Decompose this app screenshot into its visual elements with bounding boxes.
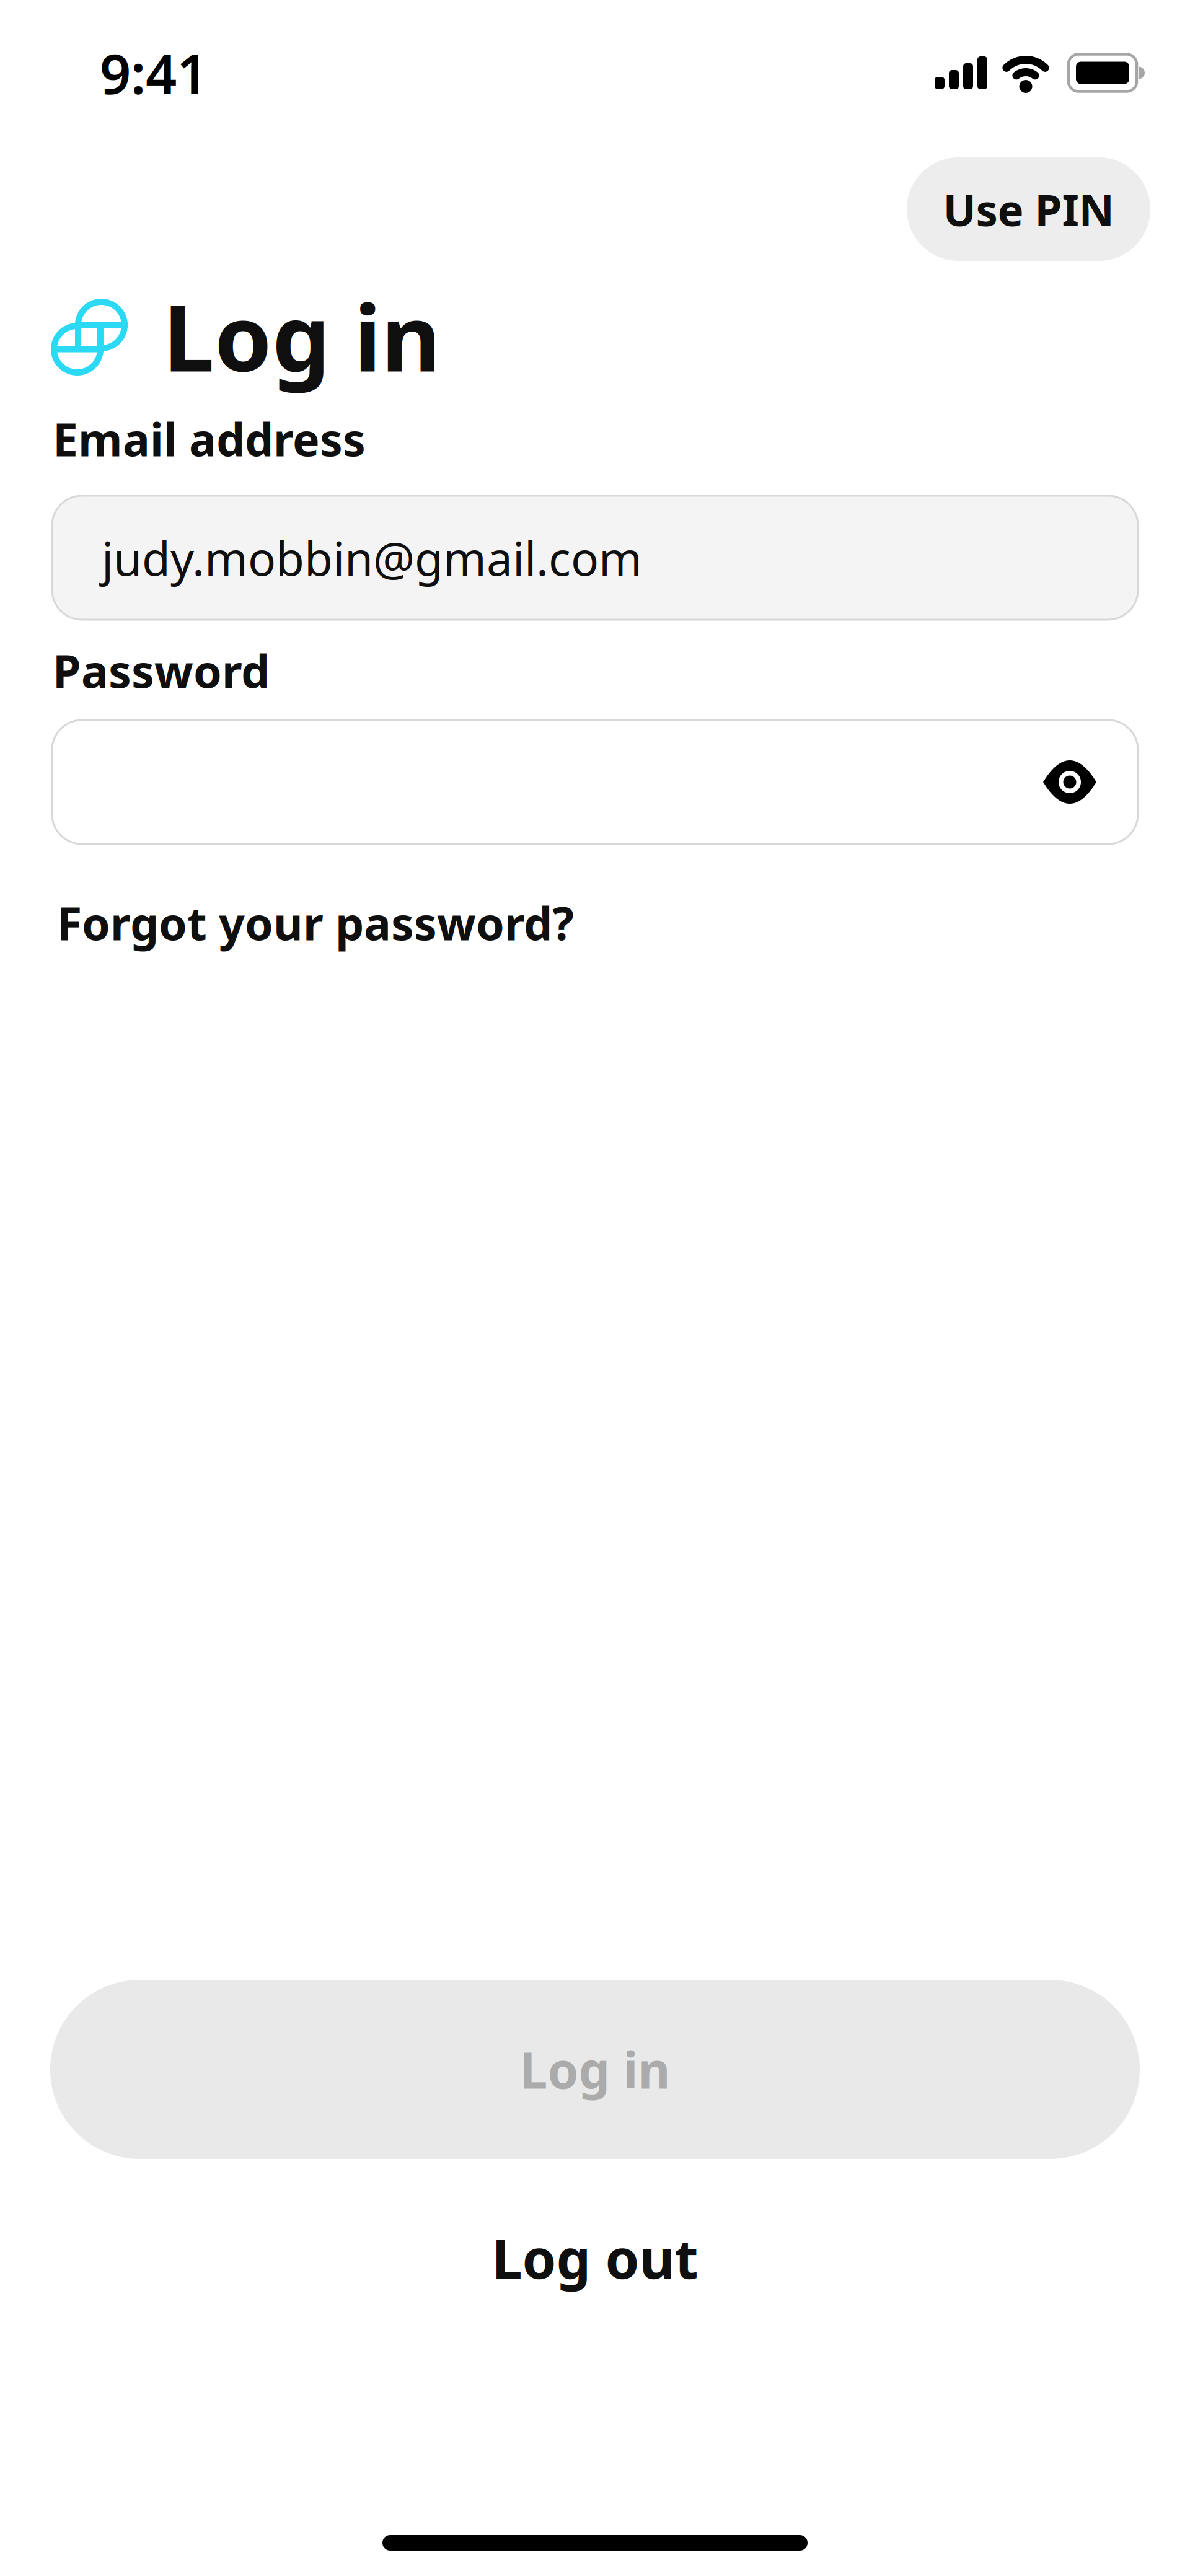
staticText: Log out [492,2221,698,2294]
button[interactable]: Show password [1043,760,1096,804]
button[interactable]: Log out [492,2238,698,2290]
staticText: Log in [163,275,441,397]
staticText: Email address [53,409,366,469]
staticText: 9:41 [100,37,208,109]
staticText: judy.mobbin@gmail.com [102,527,642,588]
staticText: Use PIN [943,180,1114,238]
staticText: Forgot your password? [57,893,574,953]
staticText: Log in [520,2037,670,2102]
button[interactable]: Log in [50,1980,1140,2159]
staticText: Password [53,640,270,701]
button[interactable]: Use PIN [907,157,1150,261]
button[interactable]: Forgot your password? [57,903,574,960]
